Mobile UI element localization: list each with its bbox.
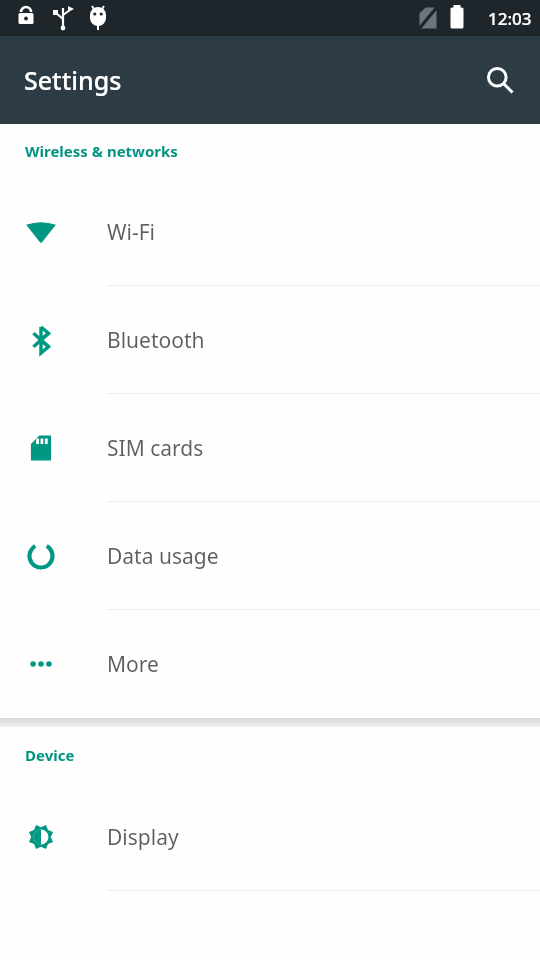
button[interactable]: More	[0, 610, 540, 718]
button[interactable]: Data usage	[0, 502, 540, 610]
staticText: Wireless & networks	[25, 141, 178, 161]
button[interactable]: SIM cards	[0, 394, 540, 502]
button[interactable]: Wi-Fi	[0, 178, 540, 286]
staticText: Display	[107, 823, 179, 852]
button[interactable]: Display	[0, 783, 540, 891]
staticText: More	[107, 650, 159, 679]
button[interactable]: Search	[474, 54, 526, 106]
staticText: Bluetooth	[107, 326, 205, 355]
staticText: Data usage	[107, 542, 219, 571]
staticText: Wi-Fi	[107, 218, 156, 247]
button[interactable]: Bluetooth	[0, 286, 540, 394]
staticText: 12:03	[488, 7, 532, 30]
staticText: Device	[25, 745, 75, 765]
staticText: SIM cards	[107, 434, 204, 463]
staticText: Settings	[24, 63, 122, 97]
